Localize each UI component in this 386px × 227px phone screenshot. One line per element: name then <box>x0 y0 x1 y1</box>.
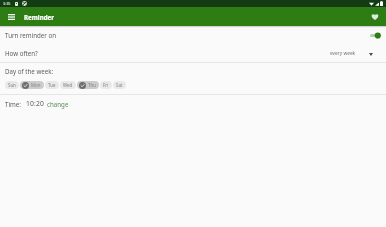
button[interactable]: Thu <box>77 81 99 89</box>
staticText: Fri <box>103 82 109 88</box>
button[interactable]: Fri <box>100 81 112 89</box>
staticText: Reminder <box>24 13 55 21</box>
button[interactable]: Open navigation menu <box>4 8 18 25</box>
button[interactable]: Favorite <box>368 8 382 25</box>
staticText: Turn reminder on <box>5 31 57 39</box>
staticText: 3:35 <box>3 1 11 6</box>
staticText: Wed <box>63 82 73 88</box>
staticText: Time: <box>5 100 21 108</box>
button[interactable]: Sun <box>5 81 19 89</box>
staticText: Day of the week: <box>5 67 54 75</box>
button[interactable]: Sat <box>113 81 126 89</box>
staticText: Sun <box>8 82 16 88</box>
staticText: change <box>47 100 69 108</box>
button[interactable]: Mon <box>20 81 44 89</box>
staticText: How often? <box>5 49 38 57</box>
staticText: every week <box>330 50 356 57</box>
button[interactable]: Turn reminder on <box>369 30 381 40</box>
button[interactable]: Turn reminder on <box>0 26 386 44</box>
staticText: Thu <box>88 82 96 88</box>
button[interactable]: Tue <box>45 81 59 89</box>
staticText: 10:20 <box>26 99 44 108</box>
button[interactable]: change <box>45 97 71 111</box>
staticText: Sat <box>116 82 123 88</box>
button[interactable]: How often? <box>0 44 386 62</box>
button[interactable]: Wed <box>60 81 76 89</box>
staticText: Tue <box>48 82 56 88</box>
staticText: Mon <box>31 82 41 88</box>
